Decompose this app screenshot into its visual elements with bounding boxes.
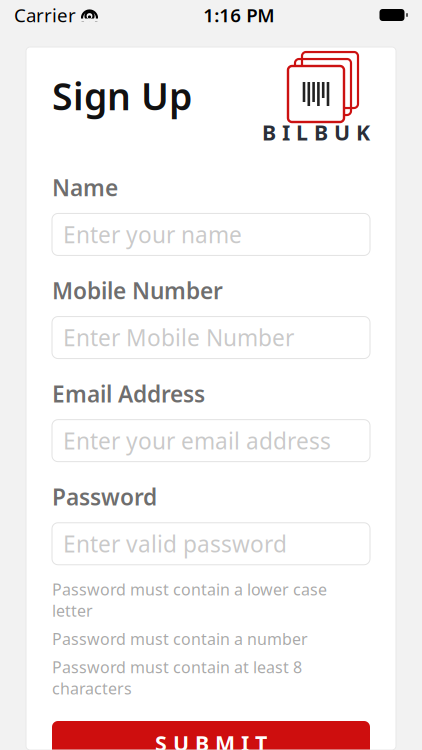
staticText: Carrier — [14, 3, 76, 27]
staticText: Sign Up — [52, 71, 192, 120]
button[interactable]: Enter your name — [52, 213, 370, 255]
button[interactable]: Enter valid password — [52, 523, 370, 565]
staticText: Password must contain a number — [52, 628, 308, 649]
staticText: Enter your email address — [63, 426, 331, 456]
staticText: B I L B U K — [262, 118, 370, 146]
staticText: Enter your name — [63, 219, 242, 249]
staticText: Enter valid password — [63, 529, 287, 559]
staticText: Name — [52, 172, 118, 202]
staticText: 1:16 PM — [203, 3, 274, 27]
staticText: Mobile Number — [52, 275, 223, 305]
staticText: Enter Mobile Number — [63, 322, 294, 353]
button[interactable]: Enter your email address — [52, 420, 370, 462]
staticText: Password — [52, 482, 157, 512]
staticText: S U B M I T — [155, 729, 267, 750]
staticText: Password must contain a lower case lette… — [52, 579, 327, 621]
staticText: Email Address — [52, 378, 205, 409]
button[interactable]: Enter Mobile Number — [52, 316, 370, 358]
button[interactable]: S U B M I T — [52, 721, 370, 750]
staticText: Password must contain at least 8 charact… — [52, 656, 302, 699]
